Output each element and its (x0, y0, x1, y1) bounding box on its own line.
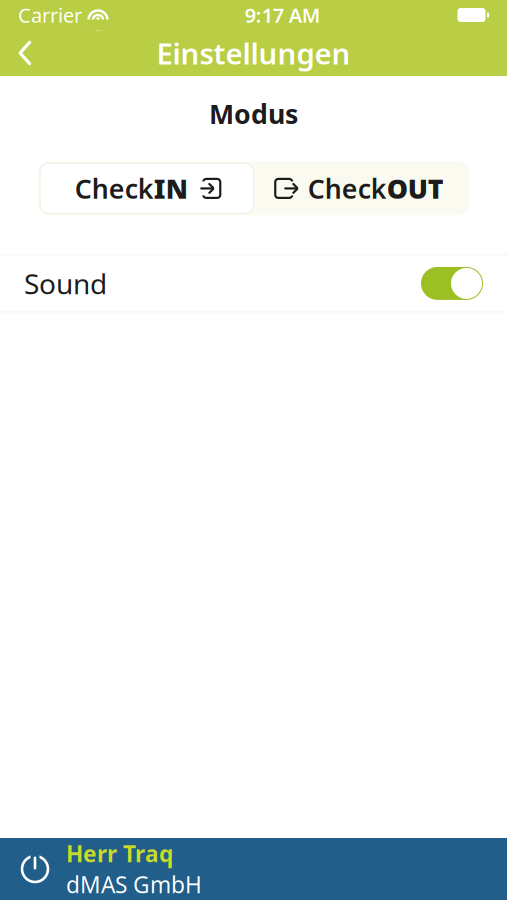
button[interactable]: Check (253, 163, 467, 213)
staticText: dMAS GmbH (66, 869, 202, 900)
button[interactable]: Power off (4, 838, 66, 900)
button[interactable]: Check (40, 163, 253, 213)
staticText: Carrier (18, 2, 82, 28)
staticText: Einstellungen (156, 33, 350, 72)
button[interactable]: Back (0, 30, 50, 76)
staticText: Check (308, 171, 387, 206)
staticText: 9:17 AM (245, 2, 321, 28)
staticText: OUT (387, 171, 444, 206)
staticText: Check (75, 171, 154, 206)
staticText: Herr Traq (66, 838, 173, 868)
staticText: Modus (209, 96, 298, 131)
staticText: Sound (24, 265, 107, 302)
button[interactable]: Sound (0, 254, 507, 312)
staticText: IN (154, 171, 188, 206)
